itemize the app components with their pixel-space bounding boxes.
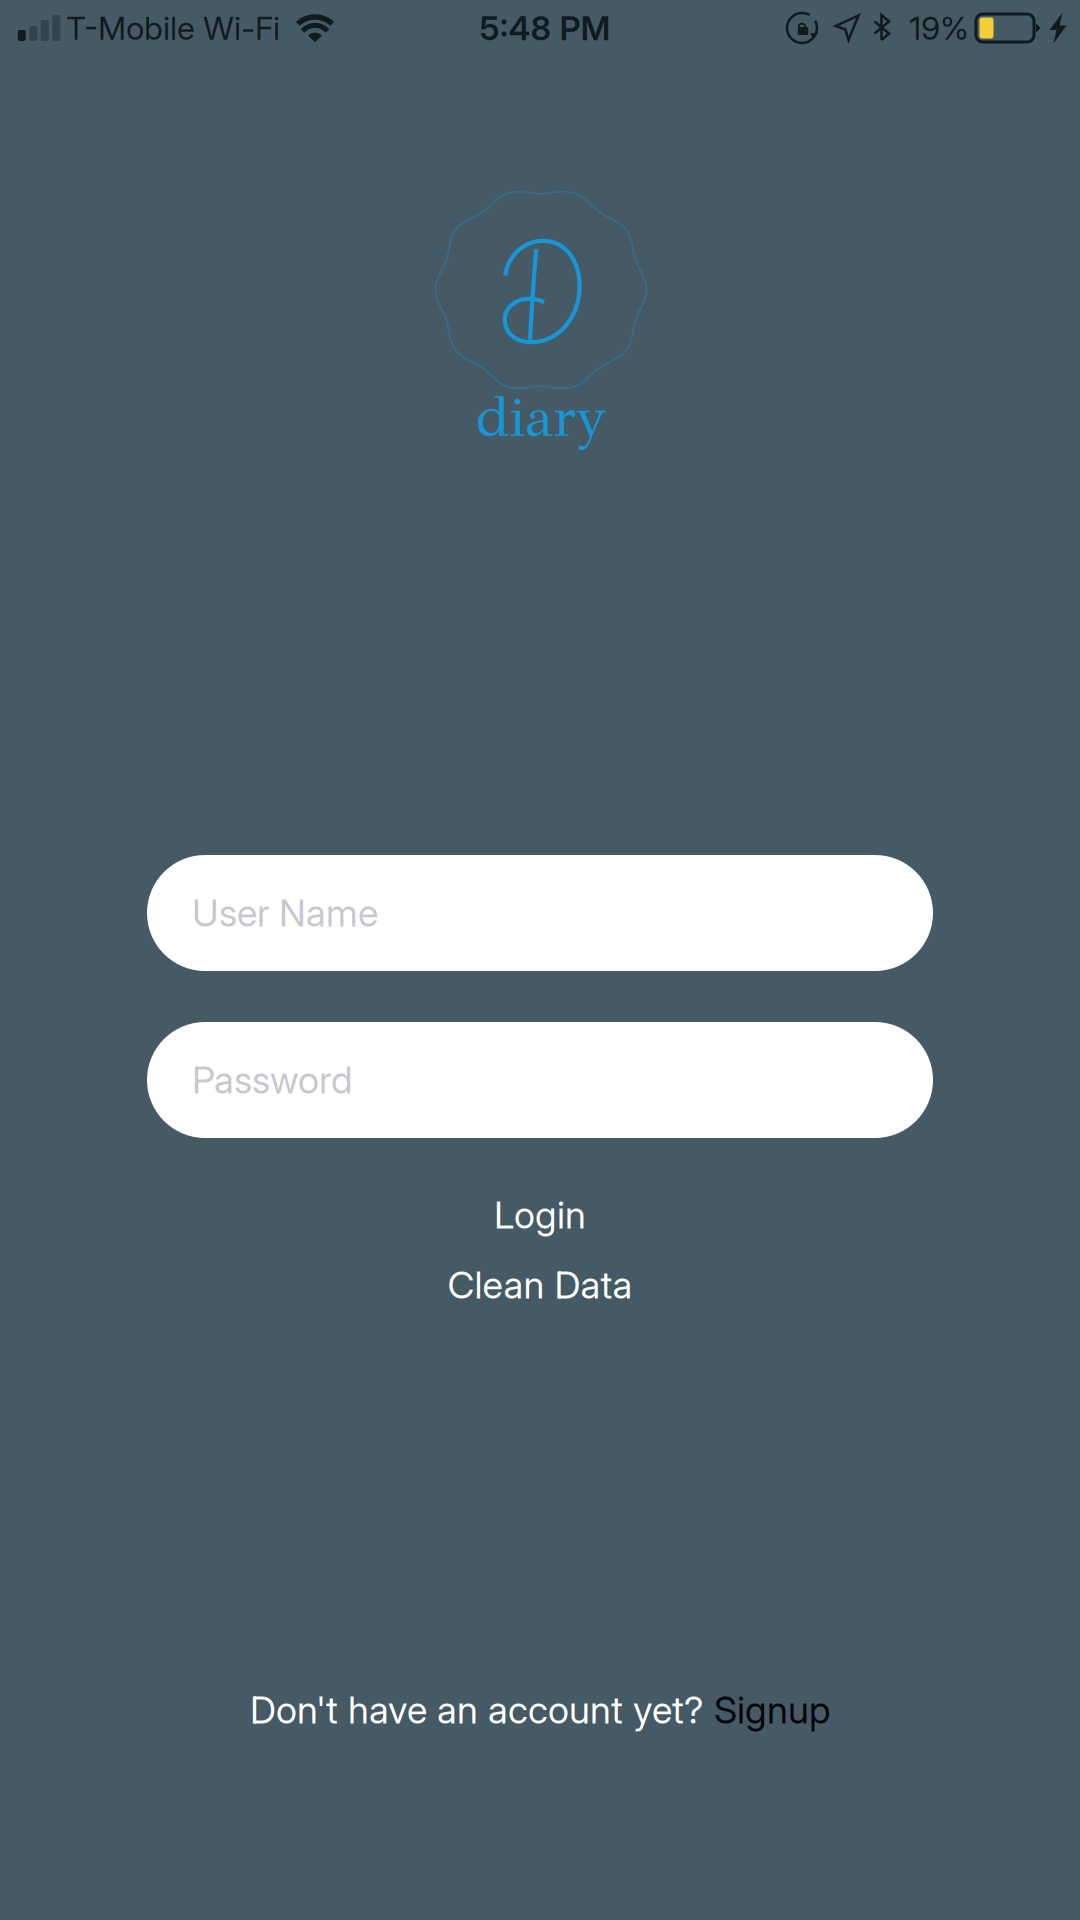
button[interactable]: Password (147, 1022, 933, 1138)
staticText: 5:48 PM (479, 8, 610, 48)
staticText: Clean Data (447, 1262, 632, 1308)
staticText: User Name (192, 890, 378, 936)
staticText: T-Mobile Wi-Fi (66, 9, 280, 47)
staticText: Signup (714, 1687, 830, 1733)
staticText: Password (192, 1057, 352, 1103)
button[interactable]: Login (147, 1187, 933, 1243)
staticText: 19% (909, 9, 969, 47)
button[interactable]: User Name (147, 855, 933, 971)
button[interactable]: Clean Data (147, 1257, 933, 1313)
button[interactable]: Don't have an account yet? (190, 1678, 890, 1742)
staticText: Don't have an account yet? (250, 1687, 703, 1733)
staticText: diary (475, 383, 606, 451)
staticText: Login (494, 1192, 586, 1238)
